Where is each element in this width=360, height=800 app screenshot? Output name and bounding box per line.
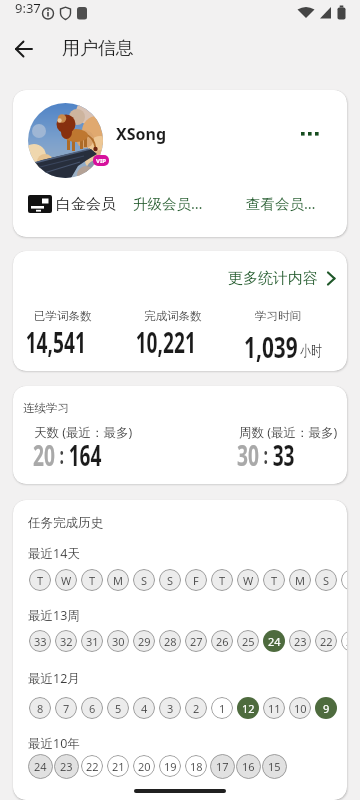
button[interactable]: W [55, 569, 77, 591]
staticText: 18 [190, 759, 203, 774]
staticText: 1,039 [244, 327, 298, 366]
staticText: 最近10年 [28, 735, 80, 752]
button[interactable] [8, 33, 40, 65]
button[interactable]: M [107, 569, 129, 591]
button[interactable]: 15 [262, 754, 287, 779]
button[interactable]: 2 [185, 697, 207, 719]
button[interactable]: 11 [263, 697, 285, 719]
button[interactable]: 4 [133, 697, 155, 719]
button[interactable]: 19 [159, 755, 181, 777]
staticText: 20 [33, 435, 55, 474]
button[interactable]: S [159, 569, 181, 591]
staticText: 19 [164, 759, 177, 774]
staticText: 6 [89, 701, 96, 716]
staticText: 25 [242, 634, 255, 649]
button[interactable]: 升级会员… [133, 183, 203, 223]
staticText: 23 [294, 634, 307, 649]
button[interactable]: 26 [211, 630, 233, 652]
staticText: 17 [216, 759, 229, 774]
button[interactable]: 27 [185, 630, 207, 652]
button[interactable]: 18 [185, 755, 207, 777]
staticText: 升级会员… [133, 193, 203, 213]
button[interactable]: 白金会员 [28, 192, 116, 216]
button[interactable]: 23 [289, 630, 311, 652]
staticText: S [167, 573, 174, 588]
button[interactable]: 3 [159, 697, 181, 719]
button[interactable]: 查看会员… [246, 183, 316, 223]
button[interactable]: 12 [237, 697, 259, 719]
button[interactable]: T [211, 569, 233, 591]
button[interactable]: 8 [29, 697, 51, 719]
button[interactable]: 5 [107, 697, 129, 719]
button[interactable]: F [185, 569, 207, 591]
staticText: 10,221 [136, 322, 196, 361]
staticText: 天数 (最近：最多) [34, 424, 133, 441]
staticText: 22 [86, 759, 99, 774]
staticText: 白金会员 [56, 195, 116, 214]
button[interactable]: 20 [133, 755, 155, 777]
staticText: 更多统计内容 [228, 269, 318, 288]
button[interactable]: 6 [81, 697, 103, 719]
staticText: 22 [320, 634, 333, 649]
staticText: S [323, 573, 330, 588]
staticText: 1 [219, 701, 226, 716]
button[interactable]: 25 [237, 630, 259, 652]
staticText: 21 [112, 759, 125, 774]
button[interactable]: 24 [28, 754, 53, 779]
button[interactable]: T [29, 569, 51, 591]
button[interactable]: 30 [107, 630, 129, 652]
button[interactable] [28, 103, 103, 178]
staticText: 2 [193, 701, 200, 716]
staticText: 最近13周 [28, 607, 80, 624]
staticText: 完成词条数 [144, 309, 202, 323]
staticText: 9:37 [15, 0, 41, 17]
button[interactable]: 22 [315, 630, 337, 652]
button[interactable]: 33 [29, 630, 51, 652]
button[interactable]: T [263, 569, 285, 591]
staticText: 26 [216, 634, 229, 649]
button[interactable]: 更多统计内容 [228, 269, 338, 288]
button[interactable]: 16 [236, 754, 261, 779]
staticText: 33 [273, 435, 295, 474]
button[interactable]: S [133, 569, 155, 591]
button[interactable] [301, 130, 321, 138]
button[interactable]: 9 [315, 697, 337, 719]
button[interactable]: 1 [211, 697, 233, 719]
staticText: 20 [138, 759, 151, 774]
button[interactable]: 21 [341, 630, 347, 652]
staticText: 30 [112, 634, 125, 649]
staticText: 4 [141, 701, 148, 716]
button[interactable]: S [341, 569, 347, 591]
button[interactable]: 22 [81, 755, 103, 777]
button[interactable]: 28 [159, 630, 181, 652]
staticText: 12 [242, 701, 255, 716]
button[interactable]: W [237, 569, 259, 591]
staticText: 32 [60, 634, 73, 649]
button[interactable]: 24 [263, 630, 285, 652]
button[interactable]: T [81, 569, 103, 591]
staticText: 14,541 [26, 322, 86, 361]
staticText: 已学词条数 [34, 309, 92, 323]
button[interactable]: 29 [133, 630, 155, 652]
button[interactable]: 10 [289, 697, 311, 719]
staticText: 10 [294, 701, 307, 716]
button[interactable]: 31 [81, 630, 103, 652]
button[interactable]: 7 [55, 697, 77, 719]
staticText: 23 [60, 759, 73, 774]
button[interactable]: M [289, 569, 311, 591]
staticText: M [113, 573, 123, 588]
staticText: 33 [34, 634, 47, 649]
staticText: F [193, 573, 199, 588]
staticText: VIP [96, 157, 106, 165]
button[interactable]: 17 [210, 754, 235, 779]
button[interactable]: S [315, 569, 337, 591]
staticText: 15 [268, 759, 281, 774]
button[interactable]: 21 [107, 755, 129, 777]
staticText: W [243, 573, 254, 588]
staticText: 最近14天 [28, 545, 80, 562]
button[interactable]: 32 [55, 630, 77, 652]
staticText: 21 [346, 634, 347, 649]
button[interactable]: 23 [54, 754, 79, 779]
staticText: T [37, 573, 44, 588]
staticText: T [89, 573, 96, 588]
